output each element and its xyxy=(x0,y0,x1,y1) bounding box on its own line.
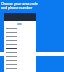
button[interactable] xyxy=(4,50,36,54)
button[interactable] xyxy=(4,42,36,46)
button[interactable] xyxy=(4,58,36,62)
button[interactable] xyxy=(4,34,36,38)
button[interactable] xyxy=(4,46,36,50)
button[interactable] xyxy=(4,38,36,42)
button[interactable] xyxy=(4,26,36,30)
button[interactable] xyxy=(4,66,36,70)
staticText: Choose your area code and phone number xyxy=(1,1,39,10)
button[interactable] xyxy=(4,54,36,58)
button[interactable] xyxy=(4,62,36,66)
button[interactable] xyxy=(4,30,36,34)
